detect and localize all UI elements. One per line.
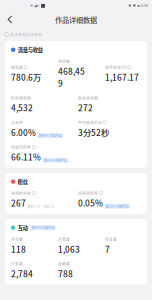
staticText: 互动 [18, 224, 28, 231]
staticText: 3分52秒 [78, 126, 109, 138]
staticText: 创作收益(元) [105, 64, 127, 70]
staticText: 788 [58, 268, 73, 280]
staticText: 点赞量 [58, 236, 70, 242]
staticText: 粉丝 [18, 178, 28, 185]
staticText: 增粉 278 | 掉粉 11 [27, 205, 54, 209]
staticText: 1,167.17 [105, 71, 139, 83]
staticText: 阅读转粉率 [78, 190, 98, 196]
staticText: 超18% 同类作品 [32, 225, 55, 230]
staticText: 粉丝展现量 [11, 95, 31, 100]
staticText: 2,784 [11, 268, 33, 280]
staticText: 点击率 [11, 120, 23, 125]
staticText: 272 [78, 102, 93, 114]
staticText: 超96% 同类作品 [39, 133, 62, 138]
staticText: 作品详细数据 [55, 14, 97, 25]
staticText: 展现量 [11, 64, 23, 70]
staticText: 1,063 [58, 243, 80, 255]
staticText: 平均阅读时长 [78, 120, 102, 125]
staticText: 展示数据延迟更新 [10, 32, 42, 37]
staticText: 净增粉丝数 [11, 190, 31, 196]
staticText: 6.00% [11, 126, 36, 138]
staticText: 4,532 [11, 102, 33, 114]
staticText: 468,459 [58, 65, 85, 89]
staticText: 66.11% [11, 151, 41, 163]
staticText: 0.05% [78, 197, 103, 209]
staticText: 118 [11, 243, 26, 255]
staticText: 收藏量 [58, 261, 70, 266]
staticText: ▣ ◢ ⌁ ⬛ [30, 3, 45, 8]
staticText: ◉ ⛊ ▬ 8:58 [128, 3, 148, 8]
staticText: 7 [105, 243, 110, 255]
staticText: 粉丝阅读量 [78, 95, 98, 100]
staticText: 780.6万 [11, 71, 41, 83]
staticText: 超79% 同类作品 [106, 204, 129, 209]
staticText: 分享量 [11, 261, 23, 266]
staticText: 阅读完成率 [11, 144, 31, 150]
staticText: 流量与收益 [18, 46, 43, 53]
staticText: 评论量 [11, 236, 23, 242]
staticText: 267 [11, 197, 26, 209]
staticText: 阅读量 [58, 58, 70, 64]
staticText: 超94% 同类作品 [44, 158, 67, 162]
staticText: 转发量 [105, 236, 117, 242]
button[interactable]: Back [2, 11, 18, 28]
